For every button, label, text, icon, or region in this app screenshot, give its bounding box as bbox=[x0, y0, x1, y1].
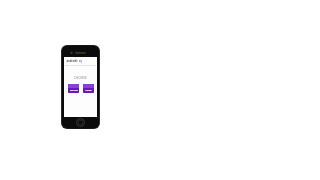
staticText: CODE bbox=[85, 89, 92, 92]
button[interactable]: androidr bbox=[66, 59, 95, 63]
staticText: IMAGE bbox=[70, 89, 78, 92]
staticText: CHOOSE bbox=[74, 76, 87, 80]
staticText: ey bbox=[79, 59, 82, 63]
staticText: androidr bbox=[66, 59, 78, 63]
button[interactable]: CODE bbox=[83, 84, 94, 93]
button[interactable]: IMAGE bbox=[68, 84, 79, 93]
